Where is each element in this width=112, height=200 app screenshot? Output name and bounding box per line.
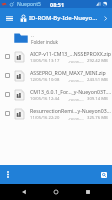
staticText: 08:51 bbox=[50, 1, 65, 8]
staticText: 243.51 MB bbox=[87, 77, 108, 83]
button[interactable]: Recent apps bbox=[80, 184, 96, 200]
button[interactable]: Open navigation menu bbox=[0, 8, 18, 28]
button[interactable]: Next folder bbox=[98, 8, 112, 28]
staticText: ResurrectionRemi...y-Nueyon03T.zip bbox=[30, 107, 112, 114]
staticText: ASSEPRO_ROM_MAX7_MINI.zip bbox=[30, 69, 106, 76]
staticText: 11/05/16 22:20 bbox=[30, 115, 60, 121]
button[interactable]: Select ASSEPRO_ROM_MAX7_MINI.zip bbox=[0, 66, 14, 85]
button[interactable]: Select ASSEPRO_ROM_MAX7_MINI.zip bbox=[0, 66, 112, 85]
staticText: ID-ROM-By-Ide-Nueyonjjada bbox=[29, 14, 98, 22]
button[interactable]: Search bbox=[96, 165, 112, 184]
button[interactable]: Select AICP-v11-CM13_...NSSEPROXX.zip bbox=[0, 47, 112, 66]
staticText: .. bbox=[31, 31, 34, 38]
staticText: -rw-rw---- bbox=[68, 116, 84, 121]
button[interactable]: Select ResurrectionRemi...y-Nueyon03T.zi… bbox=[0, 104, 112, 123]
staticText: 292.42 MB bbox=[87, 58, 108, 64]
staticText: Nuepont5 bbox=[17, 1, 41, 8]
staticText: -rw-rw---- bbox=[68, 78, 84, 83]
button[interactable]: Home bbox=[48, 184, 64, 200]
staticText: 309.14 MB bbox=[87, 96, 108, 102]
staticText: 12/05/16 10:08 bbox=[30, 77, 60, 83]
staticText: 10/05/16 12:44 bbox=[30, 96, 60, 102]
button[interactable]: Select ResurrectionRemi...y-Nueyon03T.zi… bbox=[0, 104, 14, 123]
staticText: 13/05/16 13:17 bbox=[30, 58, 60, 64]
staticText: 325.76 MB bbox=[87, 115, 108, 121]
button[interactable]: .. bbox=[0, 28, 112, 47]
staticText: -rw-rw---- bbox=[68, 59, 84, 64]
staticText: -rw-rw---- bbox=[68, 97, 84, 102]
staticText: AICP-v11-CM13_...NSSEPROXX.zip bbox=[30, 50, 112, 57]
staticText: Folder induk bbox=[31, 39, 58, 45]
staticText: CM13_6.0.1_For..._y-Nueyon03T.zip bbox=[30, 88, 112, 95]
button[interactable]: Select CM13_6.0.1_For..._y-Nueyon03T.zip bbox=[0, 85, 112, 104]
button[interactable]: Select AICP-v11-CM13_...NSSEPROXX.zip bbox=[0, 47, 14, 66]
button[interactable]: Select CM13_6.0.1_For..._y-Nueyon03T.zip bbox=[0, 85, 14, 104]
button[interactable]: Back bbox=[16, 184, 32, 200]
button[interactable]: More options bbox=[0, 165, 16, 184]
